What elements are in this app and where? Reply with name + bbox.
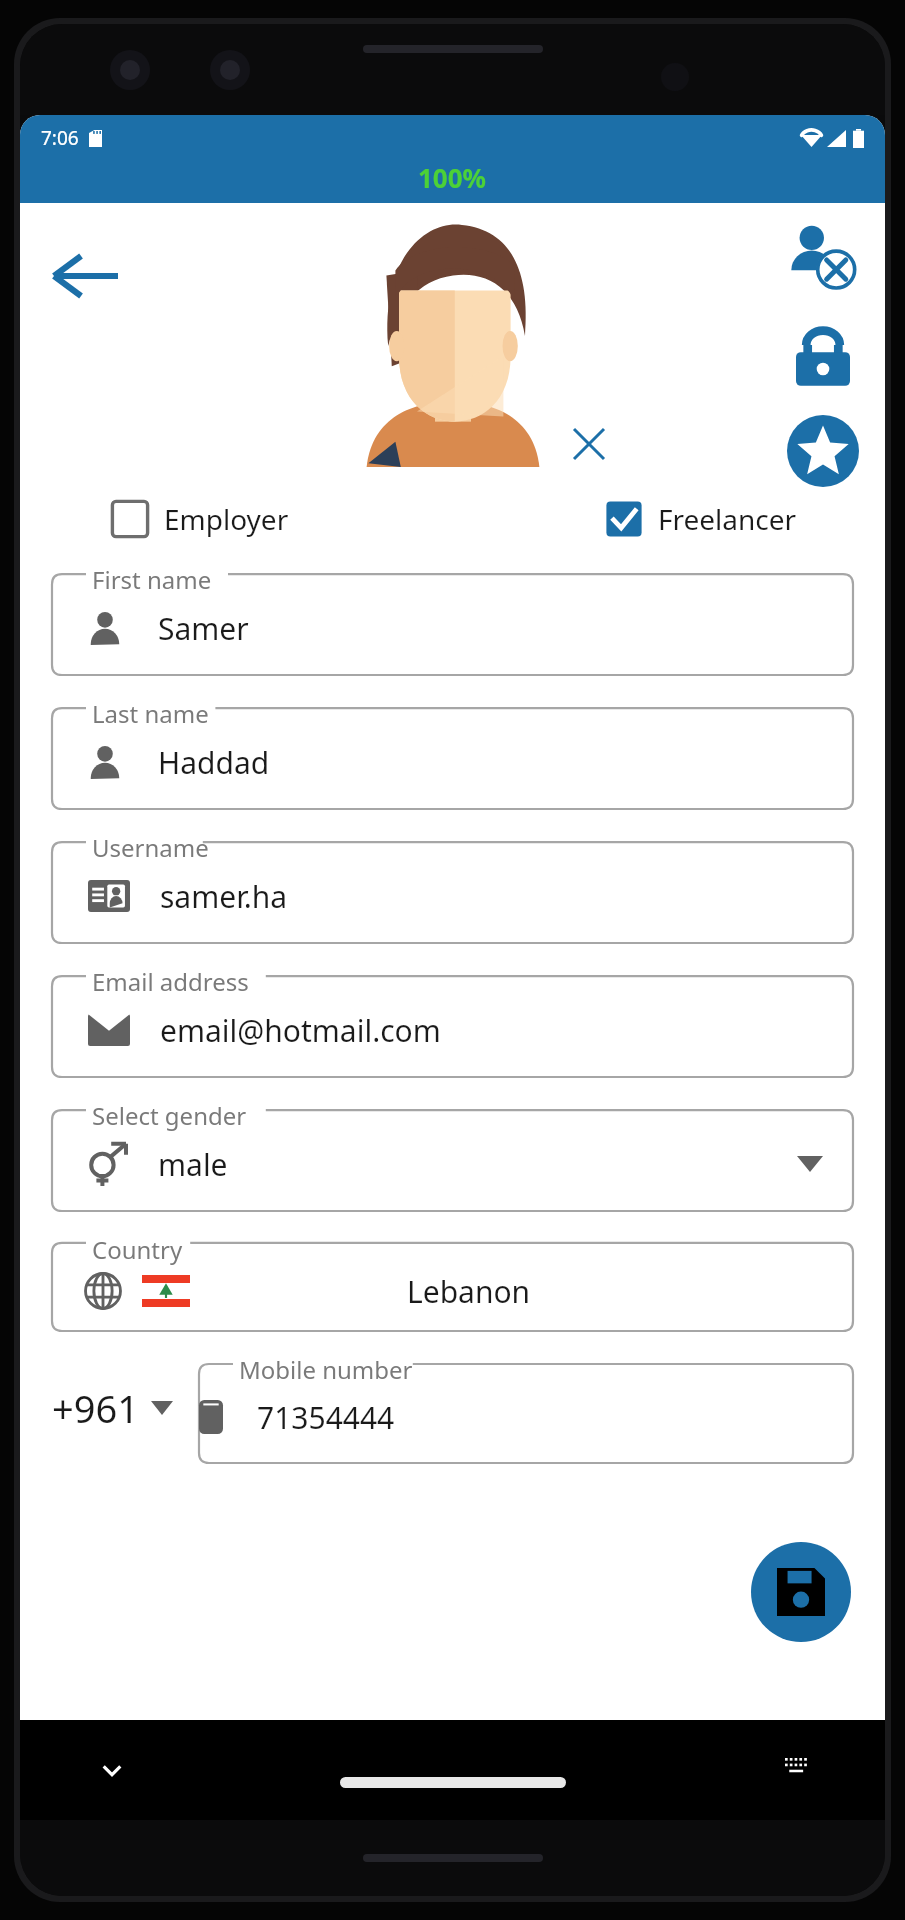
staticText: Select gender bbox=[92, 1099, 247, 1132]
staticText: email@hotmail.com bbox=[160, 1010, 441, 1051]
button[interactable]: Change password bbox=[777, 311, 869, 403]
staticText: First name bbox=[92, 563, 212, 596]
staticText: Samer bbox=[158, 608, 249, 649]
staticText: Email address bbox=[92, 965, 249, 998]
staticText: Lebanon bbox=[407, 1271, 531, 1312]
button[interactable]: +961 bbox=[52, 1382, 173, 1434]
button[interactable]: Back bbox=[42, 233, 128, 319]
staticText: Country bbox=[92, 1233, 183, 1266]
staticText: male bbox=[158, 1144, 228, 1185]
staticText: Mobile number bbox=[239, 1353, 413, 1386]
staticText: +961 bbox=[52, 1382, 139, 1434]
staticText: Haddad bbox=[158, 742, 270, 783]
button[interactable]: Hide keyboard bbox=[90, 1748, 134, 1792]
button[interactable]: Delete account bbox=[777, 211, 869, 303]
button[interactable]: Rating bbox=[777, 409, 869, 493]
button[interactable]: Employer bbox=[110, 499, 289, 539]
staticText: 100% bbox=[418, 160, 487, 195]
button[interactable]: Email address bbox=[52, 965, 853, 1077]
button[interactable]: Select gender bbox=[52, 1099, 853, 1211]
staticText: 71354444 bbox=[257, 1397, 395, 1438]
button[interactable]: Last name bbox=[52, 697, 853, 809]
staticText: Last name bbox=[92, 697, 209, 730]
button[interactable]: Save bbox=[751, 1542, 851, 1642]
button[interactable]: Country bbox=[52, 1233, 853, 1331]
staticText: 7:06 bbox=[41, 125, 79, 151]
button[interactable]: Remove photo bbox=[562, 417, 616, 471]
button[interactable]: Mobile number bbox=[199, 1353, 853, 1463]
staticText: Freelancer bbox=[658, 500, 797, 538]
button[interactable]: First name bbox=[52, 563, 853, 675]
button[interactable]: Username bbox=[52, 831, 853, 943]
button[interactable]: Switch keyboard bbox=[775, 1748, 819, 1792]
staticText: samer.ha bbox=[160, 876, 288, 917]
button[interactable]: Freelancer bbox=[604, 499, 797, 539]
staticText: Employer bbox=[164, 500, 289, 538]
staticText: Username bbox=[92, 831, 209, 864]
